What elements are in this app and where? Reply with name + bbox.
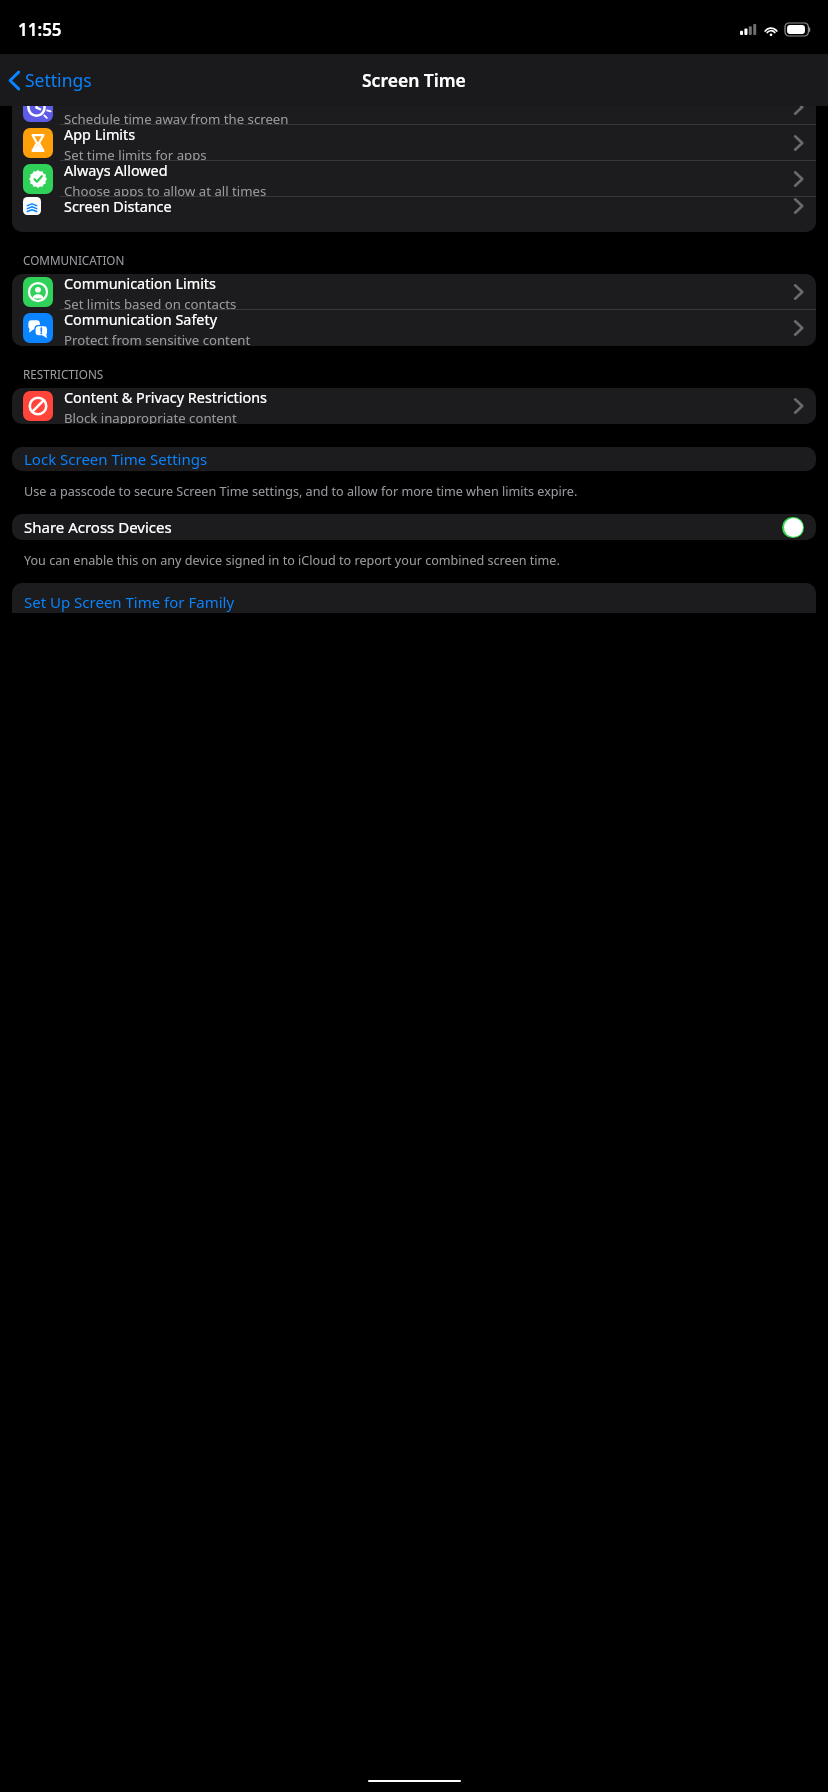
- button[interactable]: Always Allowed: [12, 161, 816, 197]
- staticText: Set limits based on contacts: [64, 295, 237, 310]
- staticText: Screen Distance: [64, 197, 172, 215]
- staticText: Set time limits for apps: [64, 146, 207, 161]
- staticText: App Limits: [64, 125, 136, 145]
- staticText: Settings: [25, 68, 92, 92]
- staticText: Screen Time: [362, 68, 466, 92]
- staticText: COMMUNICATION: [23, 252, 125, 268]
- button[interactable]: App Limits: [12, 125, 816, 161]
- staticText: Protect from sensitive content: [64, 331, 251, 346]
- staticText: Lock Screen Time Settings: [24, 449, 208, 469]
- staticText: Content & Privacy Restrictions: [64, 388, 267, 408]
- button[interactable]: Settings: [7, 64, 94, 96]
- staticText: Share Across Devices: [24, 517, 172, 537]
- button[interactable]: Share Across Devices: [12, 514, 816, 540]
- staticText: RESTRICTIONS: [23, 366, 104, 382]
- staticText: Schedule time away from the screen: [64, 110, 289, 125]
- button[interactable]: Lock Screen Time Settings: [12, 447, 816, 471]
- staticText: Set Up Screen Time for Family: [24, 592, 235, 612]
- button[interactable]: Communication Limits: [12, 274, 816, 310]
- button[interactable]: Screen Distance: [12, 197, 816, 215]
- staticText: Block inappropriate content: [64, 409, 237, 424]
- button[interactable]: Downtime: [12, 106, 816, 125]
- staticText: Communication Safety: [64, 310, 218, 330]
- staticText: Choose apps to allow at all times: [64, 182, 267, 197]
- other: Share Across Devices toggle, on: [782, 517, 804, 538]
- button[interactable]: Content & Privacy Restrictions: [12, 388, 816, 424]
- button[interactable]: Set Up Screen Time for Family: [12, 583, 816, 613]
- staticText: 11:55: [18, 18, 62, 41]
- button[interactable]: Communication Safety: [12, 310, 816, 346]
- staticText: You can enable this on any device signed…: [24, 552, 560, 569]
- staticText: Communication Limits: [64, 274, 216, 294]
- staticText: Use a passcode to secure Screen Time set…: [24, 483, 578, 500]
- staticText: Always Allowed: [64, 161, 168, 181]
